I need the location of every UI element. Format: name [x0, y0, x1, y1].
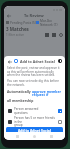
staticText: 3 Matches [6, 26, 29, 32]
button[interactable]: Back [6, 13, 12, 19]
staticText: To Review [24, 13, 44, 18]
button[interactable]: Recents [48, 133, 55, 140]
staticText: Automatically [7, 89, 32, 94]
button[interactable]: Home [31, 133, 38, 140]
button[interactable]: Add to Adnet Social [6, 127, 63, 134]
staticText: all membership [7, 98, 34, 103]
staticText: People with vibrant posts will automatic… [7, 136, 62, 140]
staticText: approve member request if [32, 89, 62, 97]
staticText: Pending Posts (5) [10, 21, 36, 25]
staticText: Add to Adnet Social [20, 59, 55, 64]
staticText: Person answered questions [14, 107, 56, 115]
staticText: Mar-Ibo Network (7) [40, 19, 63, 26]
button[interactable]: Back [14, 133, 21, 140]
button[interactable]: Back [6, 58, 13, 65]
staticText: Add to Adnet Social [18, 128, 51, 133]
staticText: Select the post, review and approve it a… [7, 66, 62, 77]
button[interactable]: Person has 5 or more friends in the grou… [7, 116, 62, 127]
staticText: You can now set node dig this before the… [7, 79, 62, 87]
staticText: Person has 5 or more friends in the grou… [14, 116, 56, 127]
staticText: 1 filter active [6, 33, 25, 37]
button[interactable]: Person answered questions [7, 105, 62, 116]
button[interactable]: Help [57, 58, 63, 64]
